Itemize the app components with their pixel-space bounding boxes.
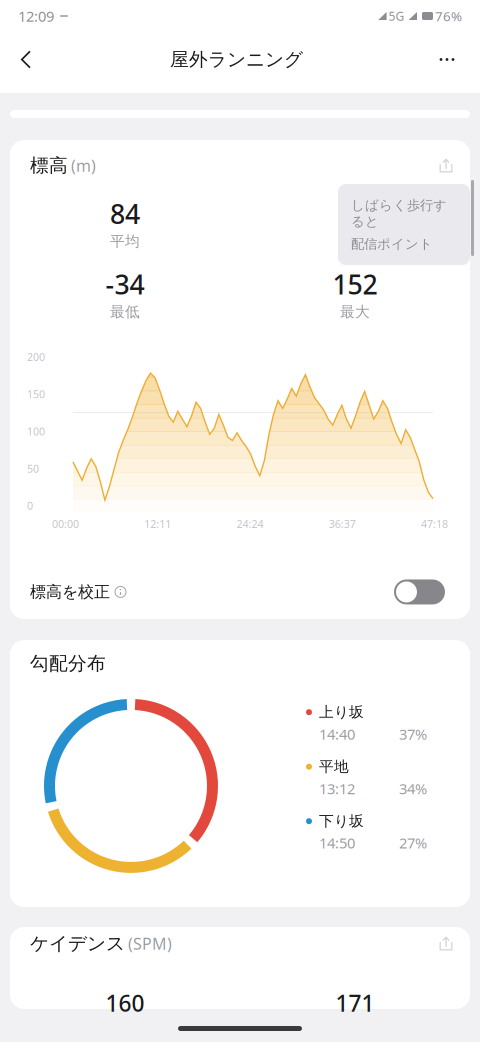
staticText: 160: [105, 988, 144, 1018]
button[interactable]: 標高を校正: [10, 570, 470, 614]
staticText: -34: [105, 266, 144, 302]
button[interactable]: Share ケイデンス: [438, 935, 454, 951]
staticText: 0: [27, 499, 33, 513]
staticText: 配信ポイント: [351, 236, 433, 252]
staticText: 171: [335, 988, 374, 1018]
staticText: 5G: [389, 8, 405, 24]
staticText: 平均: [110, 232, 140, 250]
staticText: 平地: [319, 758, 349, 776]
staticText: 下り坂: [319, 812, 364, 830]
staticText: 200: [27, 350, 45, 364]
staticText: 100: [27, 424, 45, 438]
staticText: 最大: [340, 303, 370, 321]
button[interactable]: More options: [426, 33, 468, 85]
staticText: 13:12: [319, 779, 355, 798]
staticText: 50: [27, 461, 39, 476]
staticText: 12:09: [18, 6, 54, 26]
staticText: 84: [110, 196, 140, 231]
staticText: 標高: [30, 154, 68, 177]
staticText: (SPM): [128, 933, 172, 954]
staticText: 36:37: [329, 517, 356, 531]
staticText: 76%: [435, 7, 462, 25]
staticText: 標高を校正: [30, 582, 110, 602]
staticText: 00:00: [52, 517, 79, 531]
staticText: 150: [27, 387, 45, 401]
staticText: 最低: [110, 303, 140, 321]
staticText: しばらく歩行すると: [351, 197, 447, 230]
staticText: (m): [71, 155, 96, 176]
staticText: 27%: [399, 833, 427, 853]
staticText: 勾配分布: [30, 652, 106, 675]
staticText: 屋外ランニング: [170, 48, 303, 71]
staticText: ケイデンス: [30, 932, 125, 955]
staticText: 47:18: [421, 517, 448, 531]
staticText: 14:40: [319, 724, 355, 744]
button[interactable]: Back: [5, 33, 47, 85]
staticText: 14:50: [319, 833, 355, 853]
button[interactable]: Share 標高: [438, 157, 454, 173]
staticText: 上り坂: [319, 703, 364, 721]
staticText: 34%: [399, 779, 427, 798]
staticText: 37%: [399, 724, 427, 744]
staticText: 24:24: [236, 517, 263, 531]
staticText: 152: [332, 266, 377, 302]
staticText: 12:11: [144, 517, 171, 531]
